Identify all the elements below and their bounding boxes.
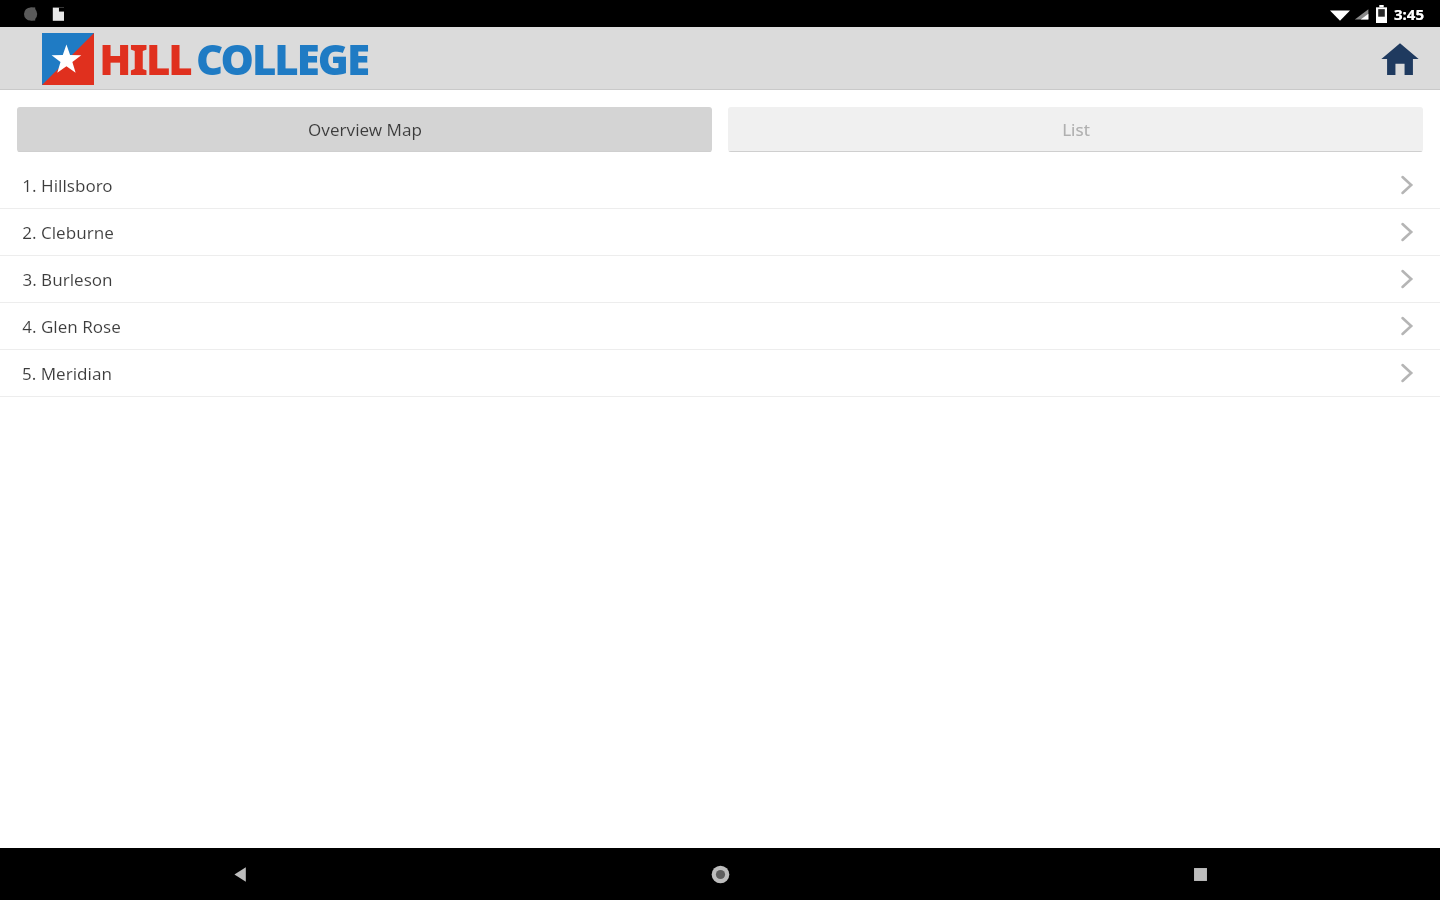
staticText: 5. Meridian xyxy=(22,362,112,385)
button[interactable]: 5. Meridian xyxy=(0,350,1440,396)
button[interactable]: 2. Cleburne xyxy=(0,209,1440,255)
button[interactable]: List xyxy=(728,107,1423,152)
button[interactable]: Home xyxy=(480,848,960,900)
button[interactable]: 1. Hillsboro xyxy=(0,162,1440,208)
button[interactable]: Overview Map xyxy=(17,107,712,152)
staticText: 3. Burleson xyxy=(22,268,113,291)
staticText: HILL xyxy=(99,30,191,87)
staticText: COLLEGE xyxy=(196,30,368,87)
staticText: 2. Cleburne xyxy=(22,221,114,244)
staticText: 3:45 xyxy=(1394,4,1424,24)
staticText: 1. Hillsboro xyxy=(22,174,113,197)
button[interactable]: Recent apps xyxy=(960,848,1440,900)
button[interactable]: Home xyxy=(1372,31,1428,87)
staticText: List xyxy=(1062,118,1090,141)
button[interactable]: Back xyxy=(0,848,480,900)
staticText: Overview Map xyxy=(308,118,422,141)
staticText: 4. Glen Rose xyxy=(22,315,121,338)
button[interactable]: 3. Burleson xyxy=(0,256,1440,302)
button[interactable]: 4. Glen Rose xyxy=(0,303,1440,349)
